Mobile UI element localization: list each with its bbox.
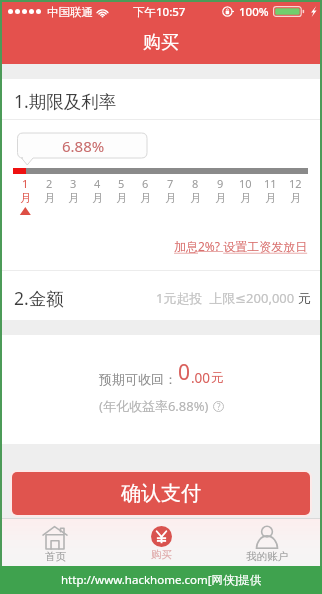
staticText: 购买 <box>151 548 172 561</box>
button[interactable]: 8 <box>183 176 208 205</box>
staticText: 加息2%? 设置工资发放日 <box>174 238 308 254</box>
staticText: 月 <box>290 191 301 205</box>
staticText: 月 <box>44 191 55 205</box>
button[interactable]: 2 <box>37 176 61 205</box>
staticText: 12 <box>289 176 302 191</box>
staticText: 3 <box>70 176 77 191</box>
staticText: 首页 <box>45 550 66 563</box>
staticText: 月 <box>265 191 276 205</box>
staticText: 我的账户 <box>246 550 288 563</box>
button[interactable]: 我的账户 <box>214 519 320 566</box>
staticText: 2 <box>46 176 53 191</box>
button[interactable]: 12 <box>283 176 308 205</box>
staticText: 1元起投 上限≤200,000 <box>156 289 298 307</box>
staticText: http://www.hackhome.com[网侠]提供 <box>61 572 262 588</box>
button[interactable]: 加息2%? 设置工资发放日 <box>174 238 308 254</box>
staticText: ? <box>217 401 221 412</box>
staticText: 1.期限及利率 <box>14 89 117 113</box>
staticText: 月 <box>165 191 176 205</box>
staticText: 月 <box>20 191 31 205</box>
button[interactable]: 首页 <box>2 519 108 566</box>
staticText: 7 <box>167 176 174 191</box>
staticText: 8 <box>192 176 199 191</box>
staticText: 月 <box>190 191 201 205</box>
button[interactable]: 1 <box>13 176 37 205</box>
button[interactable]: 9 <box>208 176 233 205</box>
staticText: 月 <box>68 191 79 205</box>
staticText: 月 <box>215 191 226 205</box>
staticText: 11 <box>264 176 277 191</box>
staticText: .00 <box>191 369 211 387</box>
staticText: 下午10:57 <box>133 4 186 20</box>
staticText: 购买 <box>143 31 179 54</box>
staticText: 月 <box>140 191 151 205</box>
staticText: 元 <box>298 290 311 306</box>
staticText: 月 <box>116 191 127 205</box>
staticText: 2.金额 <box>14 286 64 310</box>
button[interactable]: 购买 <box>108 519 214 566</box>
button[interactable]: 5 <box>109 176 133 205</box>
staticText: 月 <box>92 191 103 205</box>
staticText: 确认支付 <box>121 481 201 506</box>
staticText: 5 <box>118 176 125 191</box>
button[interactable]: 确认支付 <box>12 472 310 515</box>
staticText: 100% <box>239 4 269 20</box>
button[interactable]: 10 <box>233 176 258 205</box>
staticText: 1 <box>22 176 29 191</box>
staticText: 元 <box>211 370 224 386</box>
button[interactable]: 6 <box>133 176 158 205</box>
button[interactable]: 7 <box>158 176 183 205</box>
button[interactable]: 帮助 <box>213 401 224 412</box>
staticText: 6 <box>142 176 149 191</box>
staticText: 4 <box>94 176 101 191</box>
button[interactable]: 3 <box>61 176 85 205</box>
staticText: 6.88% <box>62 136 105 156</box>
staticText: (年化收益率6.88%) <box>99 397 209 415</box>
staticText: 10 <box>239 176 252 191</box>
staticText: 9 <box>217 176 224 191</box>
staticText: 0 <box>178 358 191 387</box>
button[interactable]: 11 <box>258 176 283 205</box>
staticText: 预期可收回： <box>99 371 177 387</box>
button[interactable]: 4 <box>85 176 109 205</box>
staticText: 月 <box>240 191 251 205</box>
staticText: 中国联通 <box>47 5 93 19</box>
